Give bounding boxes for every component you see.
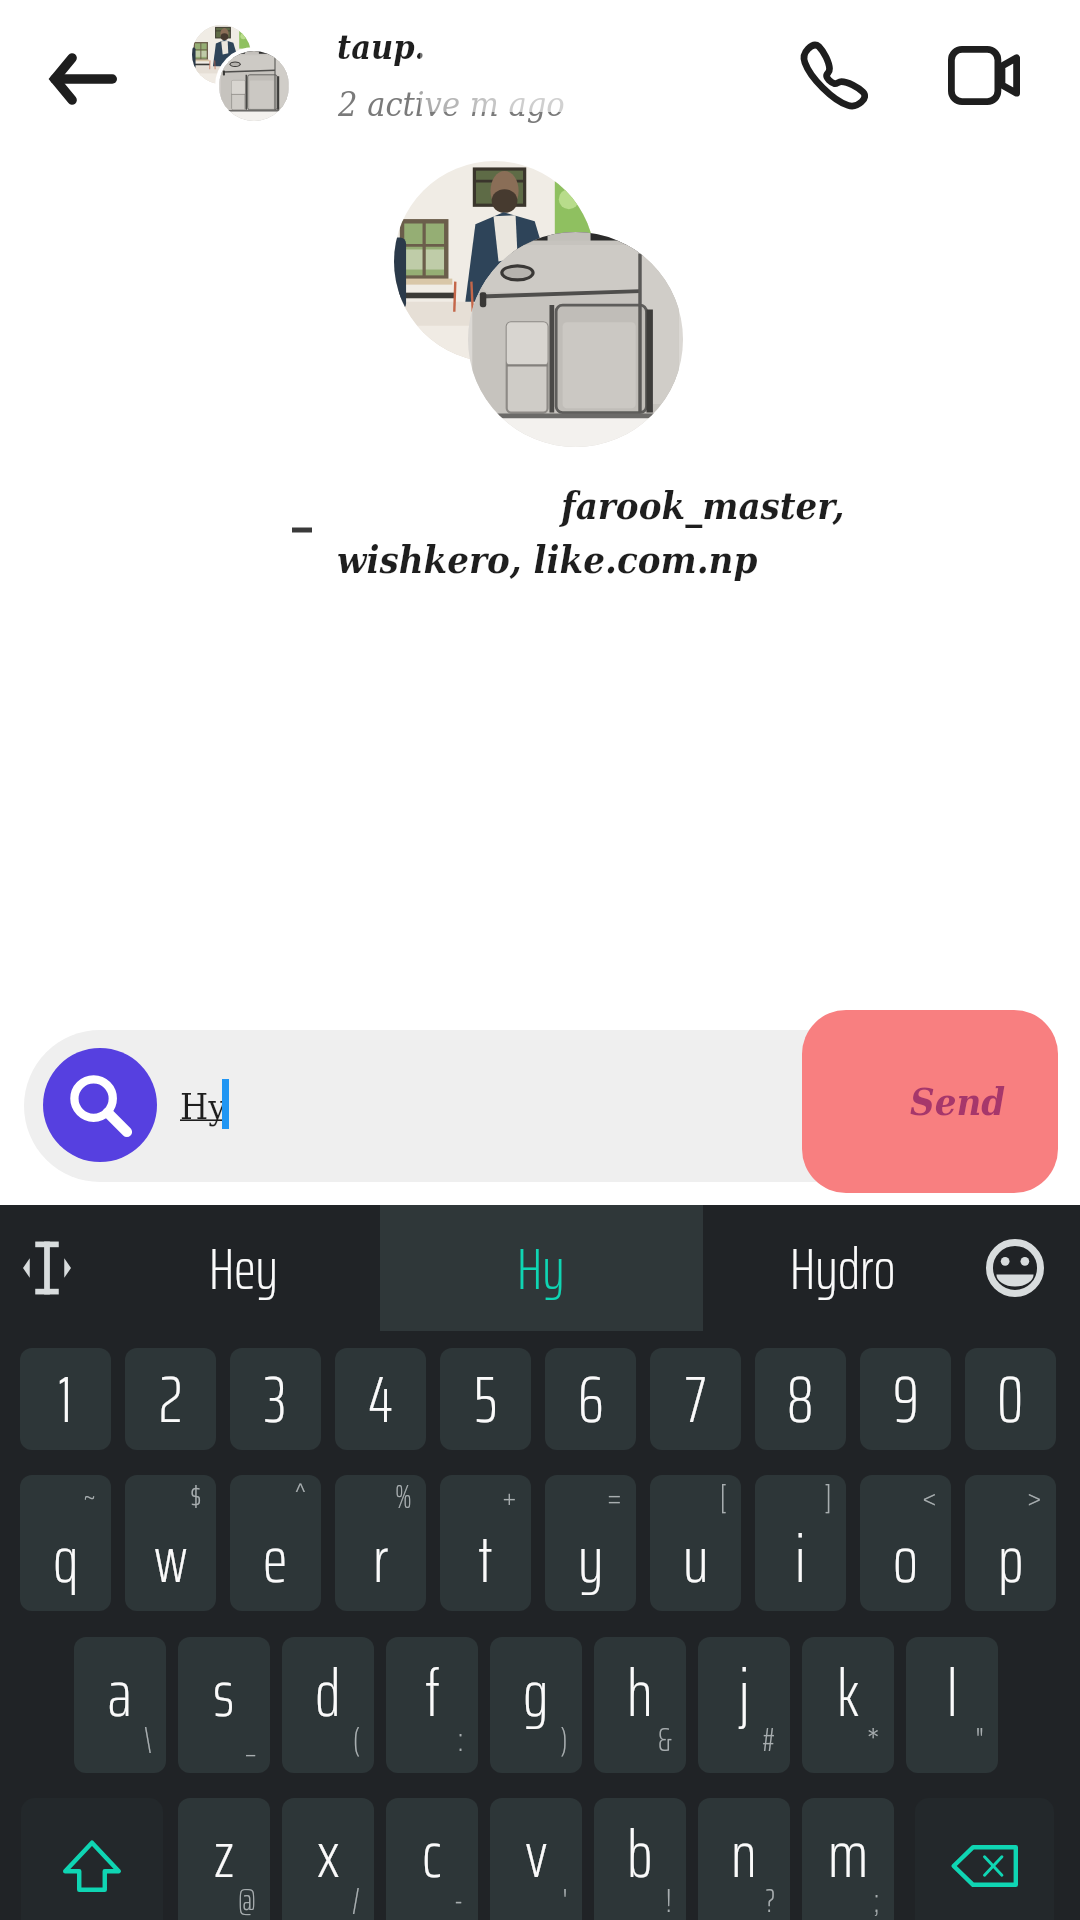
- staticText: ^: [294, 1475, 307, 1522]
- button[interactable]: m: [802, 1798, 894, 1920]
- staticText: @: [238, 1876, 256, 1920]
- button[interactable]: Send: [802, 1010, 1058, 1193]
- button[interactable]: f: [386, 1637, 478, 1773]
- button[interactable]: n: [698, 1798, 790, 1920]
- button[interactable]: w: [125, 1475, 216, 1611]
- staticText: 2: [159, 1348, 183, 1449]
- button[interactable]: s: [178, 1637, 270, 1773]
- staticText: (: [353, 1715, 360, 1765]
- button[interactable]: e: [230, 1475, 321, 1611]
- staticText: h: [627, 1641, 653, 1745]
- staticText: 0: [997, 1348, 1024, 1449]
- button[interactable]: r: [335, 1475, 426, 1611]
- button[interactable]: a: [74, 1637, 166, 1773]
- staticText: >: [1027, 1475, 1042, 1522]
- button[interactable]: 8: [755, 1348, 846, 1450]
- button[interactable]: z: [178, 1798, 270, 1920]
- button[interactable]: g: [490, 1637, 582, 1773]
- staticText: #: [762, 1715, 776, 1765]
- staticText: k: [837, 1641, 860, 1745]
- button[interactable]: Search: [43, 1048, 157, 1162]
- staticText: z: [214, 1802, 234, 1906]
- button[interactable]: x: [282, 1798, 374, 1920]
- staticText: ': [563, 1876, 568, 1920]
- staticText: b: [627, 1802, 653, 1906]
- staticText: Send: [910, 1079, 1006, 1124]
- button[interactable]: i: [755, 1475, 846, 1611]
- staticText: !: [666, 1876, 672, 1920]
- staticText: c: [422, 1802, 442, 1906]
- button[interactable]: y: [545, 1475, 636, 1611]
- staticText: v: [525, 1802, 548, 1906]
- button[interactable]: Video call: [938, 29, 1030, 121]
- button[interactable]: 9: [860, 1348, 951, 1450]
- staticText: 5: [474, 1348, 498, 1449]
- button[interactable]: l: [906, 1637, 998, 1773]
- button[interactable]: p: [965, 1475, 1056, 1611]
- button[interactable]: k: [802, 1637, 894, 1773]
- button[interactable]: Audio call: [788, 29, 880, 121]
- button[interactable]: c: [386, 1798, 478, 1920]
- button[interactable]: u: [650, 1475, 741, 1611]
- staticText: i: [795, 1507, 806, 1611]
- button[interactable]: Move cursor: [0, 1225, 94, 1311]
- button[interactable]: Backspace: [915, 1798, 1054, 1920]
- staticText: [: [720, 1475, 727, 1522]
- staticText: \: [144, 1715, 152, 1765]
- staticText: d: [315, 1641, 341, 1745]
- button[interactable]: q: [20, 1475, 111, 1611]
- button[interactable]: Back: [30, 35, 136, 123]
- button[interactable]: 4: [335, 1348, 426, 1450]
- button[interactable]: 2: [125, 1348, 216, 1450]
- staticText: l: [947, 1641, 958, 1745]
- button[interactable]: v: [490, 1798, 582, 1920]
- staticText: wishkero, like.com.np: [337, 537, 758, 582]
- staticText: +: [502, 1475, 517, 1522]
- button[interactable]: d: [282, 1637, 374, 1773]
- staticText: ~: [83, 1475, 97, 1522]
- staticText: e: [263, 1507, 288, 1611]
- button[interactable]: Emoji: [963, 1223, 1067, 1313]
- button[interactable]: t: [440, 1475, 531, 1611]
- button[interactable]: 7: [650, 1348, 741, 1450]
- staticText: 3: [264, 1348, 287, 1449]
- button[interactable]: 0: [965, 1348, 1056, 1450]
- button[interactable]: j: [698, 1637, 790, 1773]
- staticText: 7: [685, 1348, 707, 1449]
- button[interactable]: Hey: [143, 1205, 343, 1331]
- staticText: Hy: [517, 1223, 565, 1314]
- staticText: j: [739, 1641, 750, 1745]
- button[interactable]: o: [860, 1475, 951, 1611]
- button[interactable]: h: [594, 1637, 686, 1773]
- staticText: n: [731, 1802, 757, 1906]
- button[interactable]: Hy: [441, 1205, 641, 1331]
- button[interactable]: Hydro: [743, 1205, 943, 1331]
- staticText: x: [317, 1802, 340, 1906]
- staticText: 6: [578, 1348, 604, 1449]
- button[interactable]: 6: [545, 1348, 636, 1450]
- staticText: t: [478, 1507, 493, 1611]
- staticText: f: [425, 1641, 440, 1745]
- button[interactable]: Shift: [21, 1798, 163, 1920]
- staticText: :: [458, 1715, 464, 1765]
- staticText: p: [998, 1507, 1024, 1611]
- staticText: <: [922, 1475, 937, 1522]
- staticText: %: [395, 1475, 412, 1522]
- button[interactable]: [24, 1030, 1034, 1182]
- button[interactable]: 5: [440, 1348, 531, 1450]
- staticText: a: [108, 1641, 132, 1745]
- staticText: farook_master,: [561, 483, 845, 528]
- staticText: s: [213, 1641, 235, 1745]
- button[interactable]: 1: [20, 1348, 111, 1450]
- staticText: 8: [787, 1348, 814, 1449]
- button[interactable]: Profile photo: [188, 20, 298, 130]
- staticText: $: [190, 1475, 202, 1522]
- button[interactable]: b: [594, 1798, 686, 1920]
- staticText: y: [578, 1507, 604, 1611]
- staticText: q: [53, 1507, 79, 1611]
- staticText: 2 active m ago: [338, 84, 565, 124]
- staticText: &: [658, 1715, 672, 1765]
- button[interactable]: 3: [230, 1348, 321, 1450]
- staticText: u: [683, 1507, 709, 1611]
- staticText: =: [607, 1475, 622, 1522]
